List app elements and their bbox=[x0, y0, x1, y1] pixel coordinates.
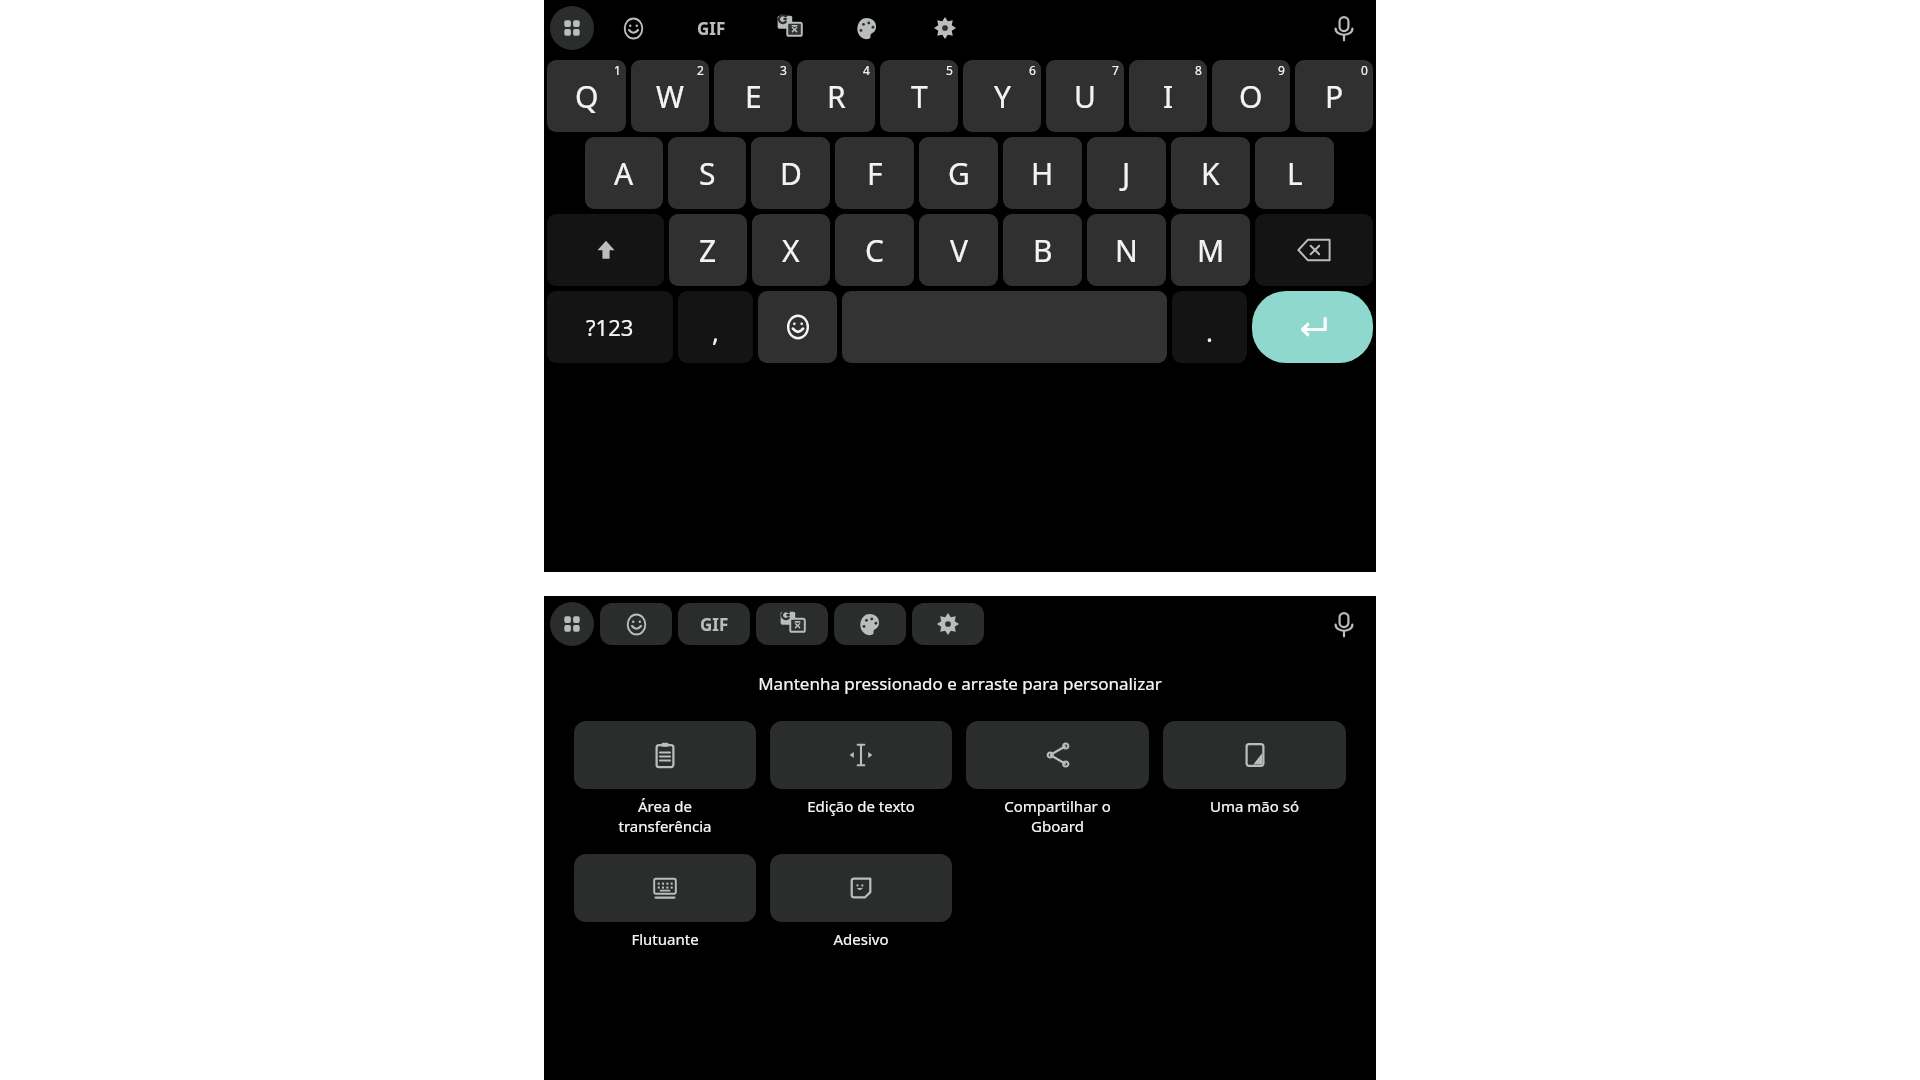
button[interactable]: . bbox=[1172, 291, 1247, 363]
button[interactable]: J bbox=[1087, 137, 1166, 209]
button[interactable]: GIF bbox=[678, 603, 750, 645]
button[interactable]: Q bbox=[547, 60, 626, 132]
button[interactable]: I bbox=[1129, 60, 1207, 132]
staticText: GIF bbox=[697, 17, 726, 40]
staticText: T bbox=[911, 76, 928, 117]
staticText: 8 bbox=[1195, 62, 1202, 78]
button[interactable]: Emoji bbox=[600, 603, 672, 645]
button[interactable]: P bbox=[1295, 60, 1373, 132]
staticText: Y bbox=[994, 76, 1011, 117]
button[interactable]: Voice input bbox=[1316, 602, 1372, 646]
button[interactable]: GIF bbox=[672, 6, 750, 50]
staticText: Z bbox=[699, 230, 717, 271]
staticText: L bbox=[1287, 153, 1303, 194]
button[interactable]: Voice input bbox=[1316, 6, 1372, 50]
staticText: 1 bbox=[614, 62, 621, 78]
staticText: W bbox=[656, 76, 684, 117]
button[interactable]: O bbox=[1212, 60, 1290, 132]
staticText: Uma mão só bbox=[1163, 796, 1346, 816]
staticText: M bbox=[1197, 230, 1225, 271]
button[interactable]: ?123 bbox=[547, 291, 673, 363]
button[interactable]: K bbox=[1171, 137, 1250, 209]
button[interactable]: Themes bbox=[834, 603, 906, 645]
button[interactable]: Y bbox=[963, 60, 1041, 132]
button[interactable]: Área de transferência bbox=[574, 721, 756, 836]
staticText: . bbox=[1206, 314, 1213, 349]
button[interactable]: C bbox=[835, 214, 914, 286]
staticText: Mantenha pressionado e arraste para pers… bbox=[544, 672, 1376, 695]
staticText: 6 bbox=[1029, 62, 1036, 78]
staticText: GIF bbox=[700, 613, 729, 636]
button[interactable]: Toolbar bbox=[550, 602, 594, 646]
staticText: Compartilhar o Gboard bbox=[966, 796, 1149, 836]
button[interactable]: Z bbox=[669, 214, 747, 286]
button[interactable]: Settings bbox=[912, 603, 984, 645]
button[interactable]: M bbox=[1171, 214, 1250, 286]
staticText: K bbox=[1201, 153, 1220, 194]
button[interactable]: F bbox=[835, 137, 914, 209]
staticText: Área de transferência bbox=[574, 796, 756, 836]
button[interactable]: G bbox=[919, 137, 998, 209]
button[interactable]: Uma mão só bbox=[1163, 721, 1346, 816]
button[interactable]: B bbox=[1003, 214, 1082, 286]
staticText: ?123 bbox=[586, 312, 634, 342]
button[interactable]: L bbox=[1255, 137, 1334, 209]
staticText: P bbox=[1325, 76, 1344, 117]
button[interactable]: A bbox=[585, 137, 663, 209]
staticText: N bbox=[1115, 230, 1138, 271]
button[interactable]: Flutuante bbox=[574, 854, 756, 949]
button[interactable]: W bbox=[631, 60, 709, 132]
staticText: 4 bbox=[863, 62, 870, 78]
staticText: O bbox=[1239, 76, 1263, 117]
button[interactable]: Toolbar bbox=[550, 6, 594, 50]
button[interactable]: X bbox=[752, 214, 830, 286]
staticText: X bbox=[782, 230, 800, 271]
staticText: A bbox=[614, 153, 634, 194]
staticText: J bbox=[1122, 153, 1131, 194]
button[interactable]: R bbox=[797, 60, 875, 132]
button[interactable]: D bbox=[751, 137, 830, 209]
staticText: G bbox=[948, 153, 970, 194]
staticText: Adesivo bbox=[770, 929, 952, 949]
staticText: 2 bbox=[697, 62, 704, 78]
staticText: Q bbox=[575, 76, 599, 117]
staticText: R bbox=[827, 76, 846, 117]
button[interactable]: Shift bbox=[547, 214, 664, 286]
button[interactable]: Translate bbox=[750, 6, 828, 50]
staticText: 9 bbox=[1278, 62, 1285, 78]
button[interactable]: Emoji bbox=[594, 6, 672, 50]
staticText: Flutuante bbox=[574, 929, 756, 949]
staticText: C bbox=[865, 230, 884, 271]
staticText: I bbox=[1163, 76, 1174, 117]
button[interactable]: T bbox=[880, 60, 958, 132]
staticText: H bbox=[1031, 153, 1054, 194]
button[interactable]: Settings bbox=[906, 6, 984, 50]
staticText: E bbox=[745, 76, 762, 117]
staticText: F bbox=[867, 153, 883, 194]
button[interactable]: , bbox=[678, 291, 753, 363]
button[interactable]: Enter bbox=[1252, 291, 1373, 363]
button[interactable]: V bbox=[919, 214, 998, 286]
button[interactable]: U bbox=[1046, 60, 1124, 132]
button[interactable]: Backspace bbox=[1255, 214, 1373, 286]
staticText: D bbox=[780, 153, 802, 194]
staticText: 5 bbox=[946, 62, 953, 78]
button[interactable]: Compartilhar o Gboard bbox=[966, 721, 1149, 836]
button[interactable]: H bbox=[1003, 137, 1082, 209]
staticText: B bbox=[1033, 230, 1053, 271]
button[interactable]: S bbox=[668, 137, 746, 209]
staticText: 7 bbox=[1112, 62, 1119, 78]
staticText: Edição de texto bbox=[770, 796, 952, 816]
button[interactable]: Adesivo bbox=[770, 854, 952, 949]
button[interactable]: Translate bbox=[756, 603, 828, 645]
button[interactable]: Themes bbox=[828, 6, 906, 50]
button[interactable]: Emoji bbox=[758, 291, 837, 363]
staticText: 3 bbox=[780, 62, 787, 78]
staticText: S bbox=[699, 153, 716, 194]
button[interactable]: E bbox=[714, 60, 792, 132]
staticText: , bbox=[712, 314, 719, 349]
button[interactable]: Edição de texto bbox=[770, 721, 952, 816]
staticText: U bbox=[1074, 76, 1096, 117]
button[interactable]: N bbox=[1087, 214, 1166, 286]
